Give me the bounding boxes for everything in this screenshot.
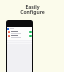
- button[interactable]: Toggle: [7, 34, 32, 38]
- button[interactable]: App icon: [7, 27, 32, 30]
- button[interactable]: Toggle: [29, 31, 32, 33]
- staticText: Easily Configure: [20, 4, 45, 16]
- button[interactable]: Toggle: [29, 35, 32, 37]
- button[interactable]: Toggle: [7, 30, 32, 34]
- other: App icon: [7, 28, 9, 30]
